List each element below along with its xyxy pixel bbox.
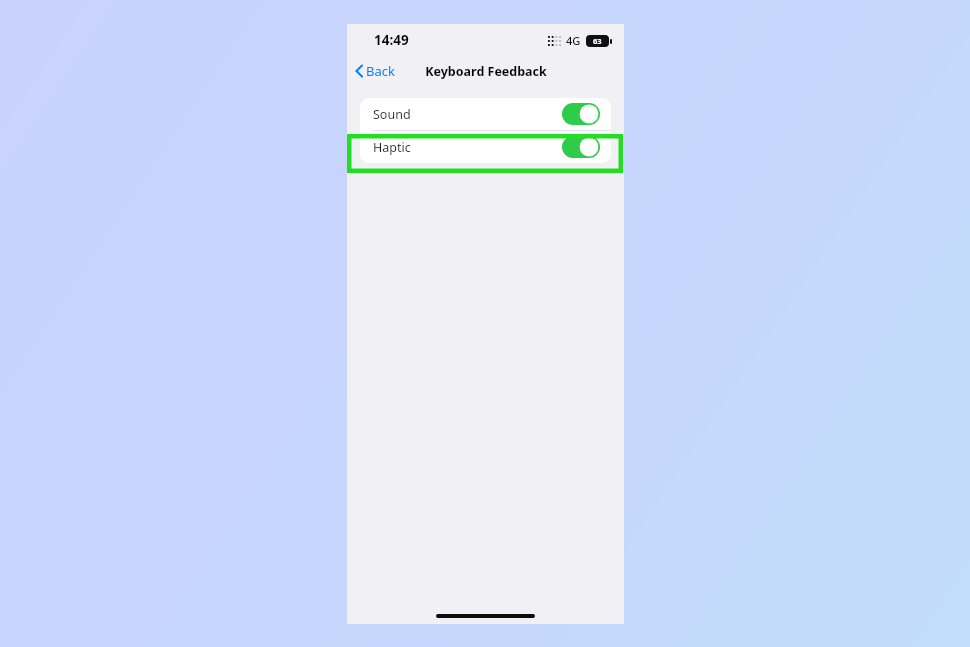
button[interactable]: Sound toggle, on bbox=[562, 103, 600, 125]
button[interactable]: Haptic toggle, on bbox=[562, 136, 600, 158]
staticText: 63 bbox=[593, 36, 602, 46]
staticText: 14:49 bbox=[374, 31, 409, 49]
staticText: Sound bbox=[373, 106, 562, 123]
staticText: 4G bbox=[566, 33, 581, 48]
staticText: Keyboard Feedback bbox=[425, 63, 547, 80]
staticText: Back bbox=[366, 62, 395, 80]
button[interactable]: Back bbox=[347, 58, 403, 84]
button[interactable]: Haptic bbox=[360, 131, 611, 163]
staticText: Haptic bbox=[373, 139, 562, 156]
button[interactable]: Sound bbox=[360, 98, 611, 130]
